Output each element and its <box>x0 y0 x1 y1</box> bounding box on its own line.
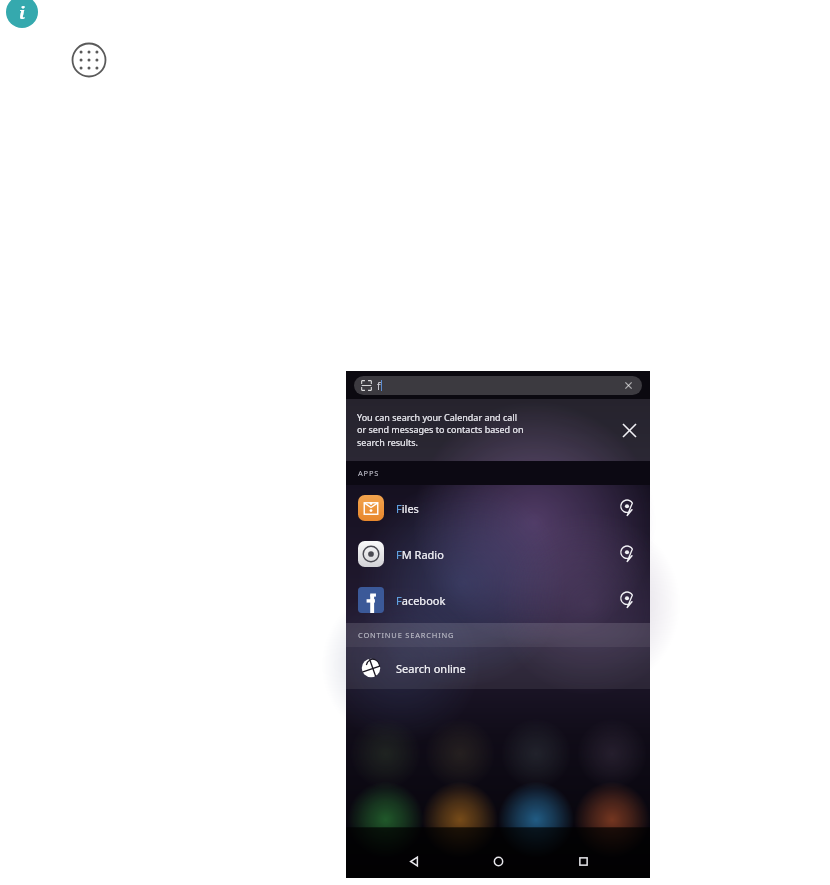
button[interactable]: Facebook <box>346 577 650 623</box>
button[interactable]: App drawer <box>71 42 107 78</box>
button[interactable]: Dismiss tip <box>616 417 642 443</box>
staticText: i <box>19 1 26 24</box>
staticText: f <box>377 379 381 393</box>
button[interactable]: Home <box>481 844 515 878</box>
staticText: APPS <box>358 468 380 478</box>
button[interactable]: Open Files location <box>616 497 638 519</box>
staticText: Files <box>396 501 419 516</box>
staticText: FM Radio <box>396 547 444 562</box>
button[interactable]: FM Radio <box>346 531 650 577</box>
staticText: Search online <box>396 661 466 676</box>
staticText: CONTINUE SEARCHING <box>358 630 455 640</box>
button[interactable]: Clear search <box>622 379 635 392</box>
button[interactable]: Search online <box>346 647 650 689</box>
button[interactable]: Information <box>6 0 38 28</box>
staticText: You can search your Calendar and call or… <box>357 411 616 449</box>
button[interactable]: Recent apps <box>566 844 600 878</box>
button[interactable]: Files <box>346 485 650 531</box>
button[interactable]: Open FM Radio location <box>616 543 638 565</box>
button[interactable]: Back <box>397 844 431 878</box>
button[interactable]: f <box>354 376 642 395</box>
staticText: Facebook <box>396 593 446 608</box>
button[interactable]: Open Facebook location <box>616 589 638 611</box>
